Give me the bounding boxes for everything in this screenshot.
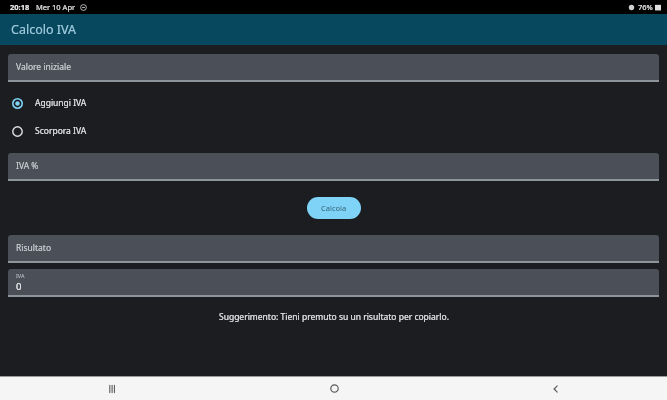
staticText: IVA % — [16, 160, 39, 172]
button[interactable]: Risultato — [8, 235, 659, 263]
staticText: Calcolo IVA — [11, 21, 76, 38]
button[interactable]: Home — [223, 377, 445, 400]
staticText: Risultato — [16, 242, 52, 254]
staticText: Scorpora IVA — [35, 125, 87, 137]
button[interactable]: IVA — [8, 269, 659, 297]
staticText: Suggerimento: Tieni premuto su un risult… — [219, 311, 449, 323]
staticText: 20:18 — [10, 2, 30, 12]
button[interactable]: Aggiungi IVA — [0, 94, 667, 112]
staticText: Valore iniziale — [16, 61, 71, 73]
staticText: Mer 10 Apr — [36, 2, 76, 12]
staticText: 0 — [16, 280, 22, 293]
staticText: Aggiungi IVA — [35, 97, 87, 109]
button[interactable]: Scorpora IVA — [0, 122, 667, 140]
button[interactable]: Back — [445, 377, 667, 400]
staticText: 76% — [638, 2, 653, 12]
button[interactable]: IVA % — [8, 153, 659, 181]
button[interactable]: Recent apps — [0, 377, 223, 400]
staticText: Calcola — [321, 203, 347, 213]
staticText: IVA — [16, 272, 25, 279]
button[interactable]: Valore iniziale — [8, 54, 659, 82]
button[interactable]: Calcola — [307, 197, 361, 219]
